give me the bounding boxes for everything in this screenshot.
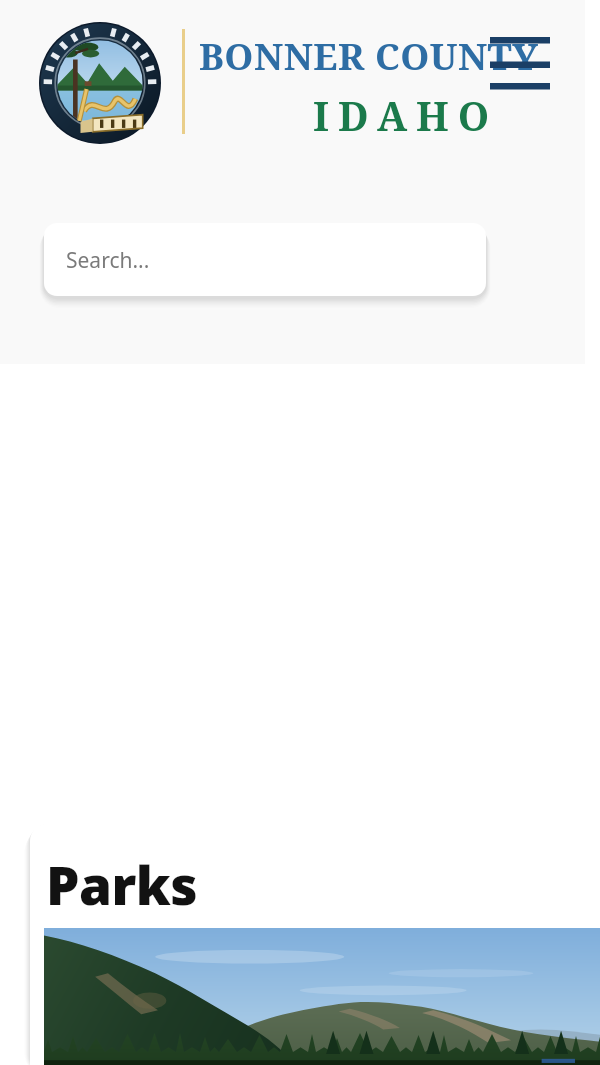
button[interactable] [30, 824, 600, 1065]
button[interactable]: Bonner County Idaho home [0, 0, 585, 160]
button[interactable]: Search [44, 223, 486, 296]
